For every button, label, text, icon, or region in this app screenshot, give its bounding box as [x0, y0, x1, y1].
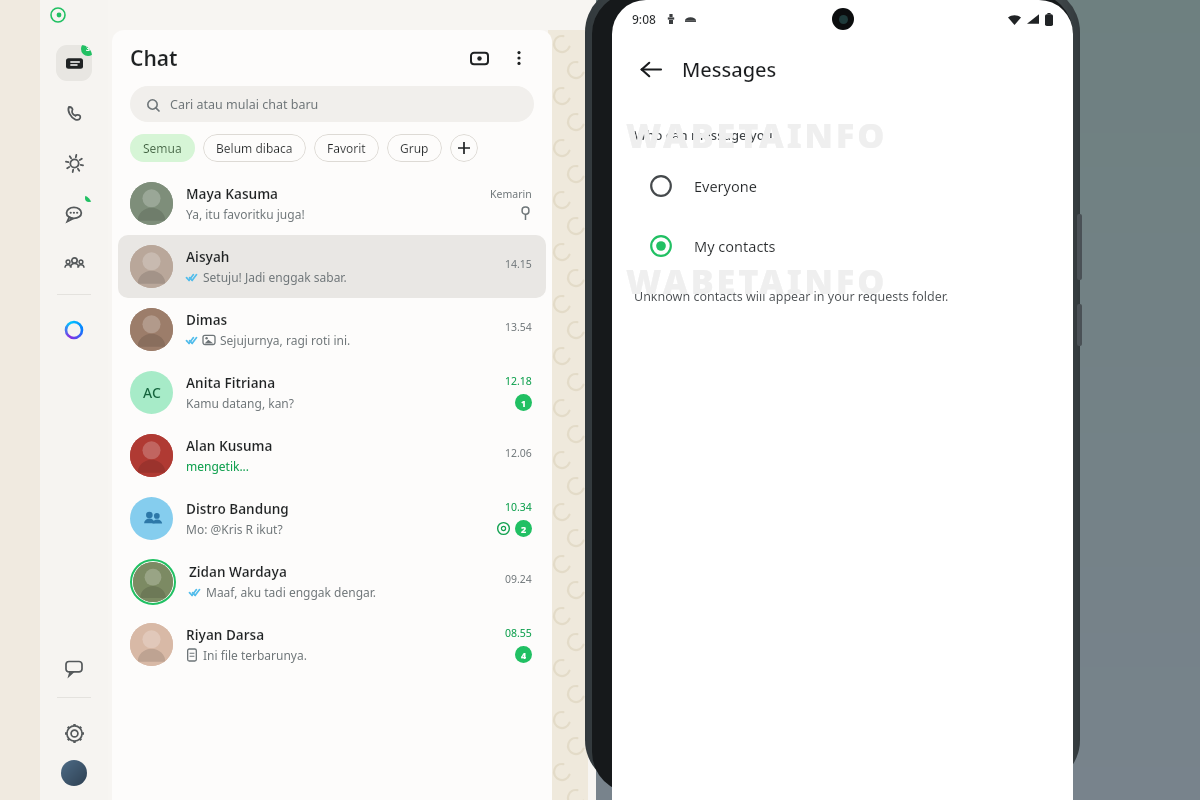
staticText: Messages — [682, 56, 777, 83]
staticText: 12.06 — [505, 446, 532, 460]
staticText: 08.55 — [505, 626, 532, 640]
button[interactable]: Belum dibaca — [203, 134, 306, 162]
button[interactable]: Navigation item — [56, 95, 92, 131]
button[interactable]: Distro Bandung — [118, 487, 546, 550]
button[interactable]: Navigation item — [56, 312, 92, 348]
button[interactable]: Navigation item — [56, 195, 92, 231]
button[interactable]: Zidan Wardaya — [118, 550, 546, 613]
button[interactable]: More options — [504, 43, 534, 73]
button[interactable]: Grup — [387, 134, 442, 162]
staticText: mengetik... — [186, 458, 250, 474]
button[interactable]: Navigation item — [56, 715, 92, 751]
staticText: WABETAINFO — [626, 112, 888, 158]
button[interactable]: Cari atau mulai chat baru — [130, 86, 534, 122]
staticText: Setuju! Jadi enggak sabar. — [203, 269, 347, 285]
staticText: Belum dibaca — [216, 140, 293, 156]
button[interactable]: Navigation item — [56, 650, 92, 686]
staticText: Zidan Wardaya — [189, 563, 287, 581]
staticText: 14.15 — [505, 257, 532, 271]
button[interactable]: Everyone — [612, 166, 1073, 206]
button[interactable]: Navigation item — [56, 245, 92, 281]
staticText: 12.18 — [505, 374, 532, 388]
staticText: Kamu datang, kan? — [186, 395, 294, 411]
staticText: WABETAINFO — [626, 258, 888, 304]
staticText: Everyone — [694, 176, 757, 196]
staticText: Ini file terbarunya. — [203, 647, 307, 663]
staticText: 13.54 — [505, 320, 532, 334]
staticText: Distro Bandung — [186, 500, 289, 518]
staticText: Who can message you — [634, 126, 773, 144]
staticText: 1 — [521, 397, 527, 409]
staticText: AC — [143, 383, 161, 402]
button[interactable]: Back — [630, 49, 670, 89]
staticText: Favorit — [327, 140, 366, 156]
button[interactable]: Alan Kusuma — [118, 424, 546, 487]
staticText: Cari atau mulai chat baru — [170, 96, 319, 113]
button[interactable]: Navigation item — [56, 45, 92, 81]
staticText: Semua — [143, 140, 182, 156]
staticText: Alan Kusuma — [186, 437, 273, 455]
staticText: My contacts — [694, 236, 776, 256]
button[interactable]: Semua — [130, 134, 195, 162]
staticText: Grup — [400, 140, 429, 156]
staticText: 10.34 — [505, 500, 532, 514]
staticText: Unknown contacts will appear in your req… — [634, 288, 949, 305]
staticText: Maaf, aku tadi enggak dengar. — [206, 584, 377, 600]
button[interactable]: New chat — [464, 43, 494, 73]
staticText: 3 — [86, 45, 91, 54]
staticText: Riyan Darsa — [186, 626, 265, 644]
staticText: 09.24 — [505, 572, 532, 586]
button[interactable]: Riyan Darsa — [118, 613, 546, 676]
button[interactable]: My contacts — [612, 226, 1073, 266]
button[interactable]: Aisyah — [118, 235, 546, 298]
button[interactable]: Dimas — [118, 298, 546, 361]
staticText: Sejujurnya, ragi roti ini. — [220, 332, 351, 348]
button[interactable]: Favorit — [314, 134, 379, 162]
staticText: Maya Kasuma — [186, 185, 279, 203]
staticText: Kemarin — [490, 187, 532, 201]
staticText: Dimas — [186, 311, 228, 329]
staticText: 4 — [521, 649, 527, 661]
staticText: Mo: @Kris R ikut? — [186, 521, 283, 537]
staticText: Chat — [130, 44, 178, 73]
staticText: 9:08 — [632, 11, 656, 27]
button[interactable]: Add filter — [450, 134, 478, 162]
button[interactable]: Maya Kasuma — [118, 172, 546, 235]
staticText: 2 — [521, 523, 527, 535]
staticText: Ya, itu favoritku juga! — [186, 206, 305, 222]
button[interactable]: Profile — [61, 760, 87, 786]
staticText: Anita Fitriana — [186, 374, 276, 392]
staticText: Aisyah — [186, 248, 230, 266]
button[interactable]: Navigation item — [56, 145, 92, 181]
button[interactable]: AC — [118, 361, 546, 424]
